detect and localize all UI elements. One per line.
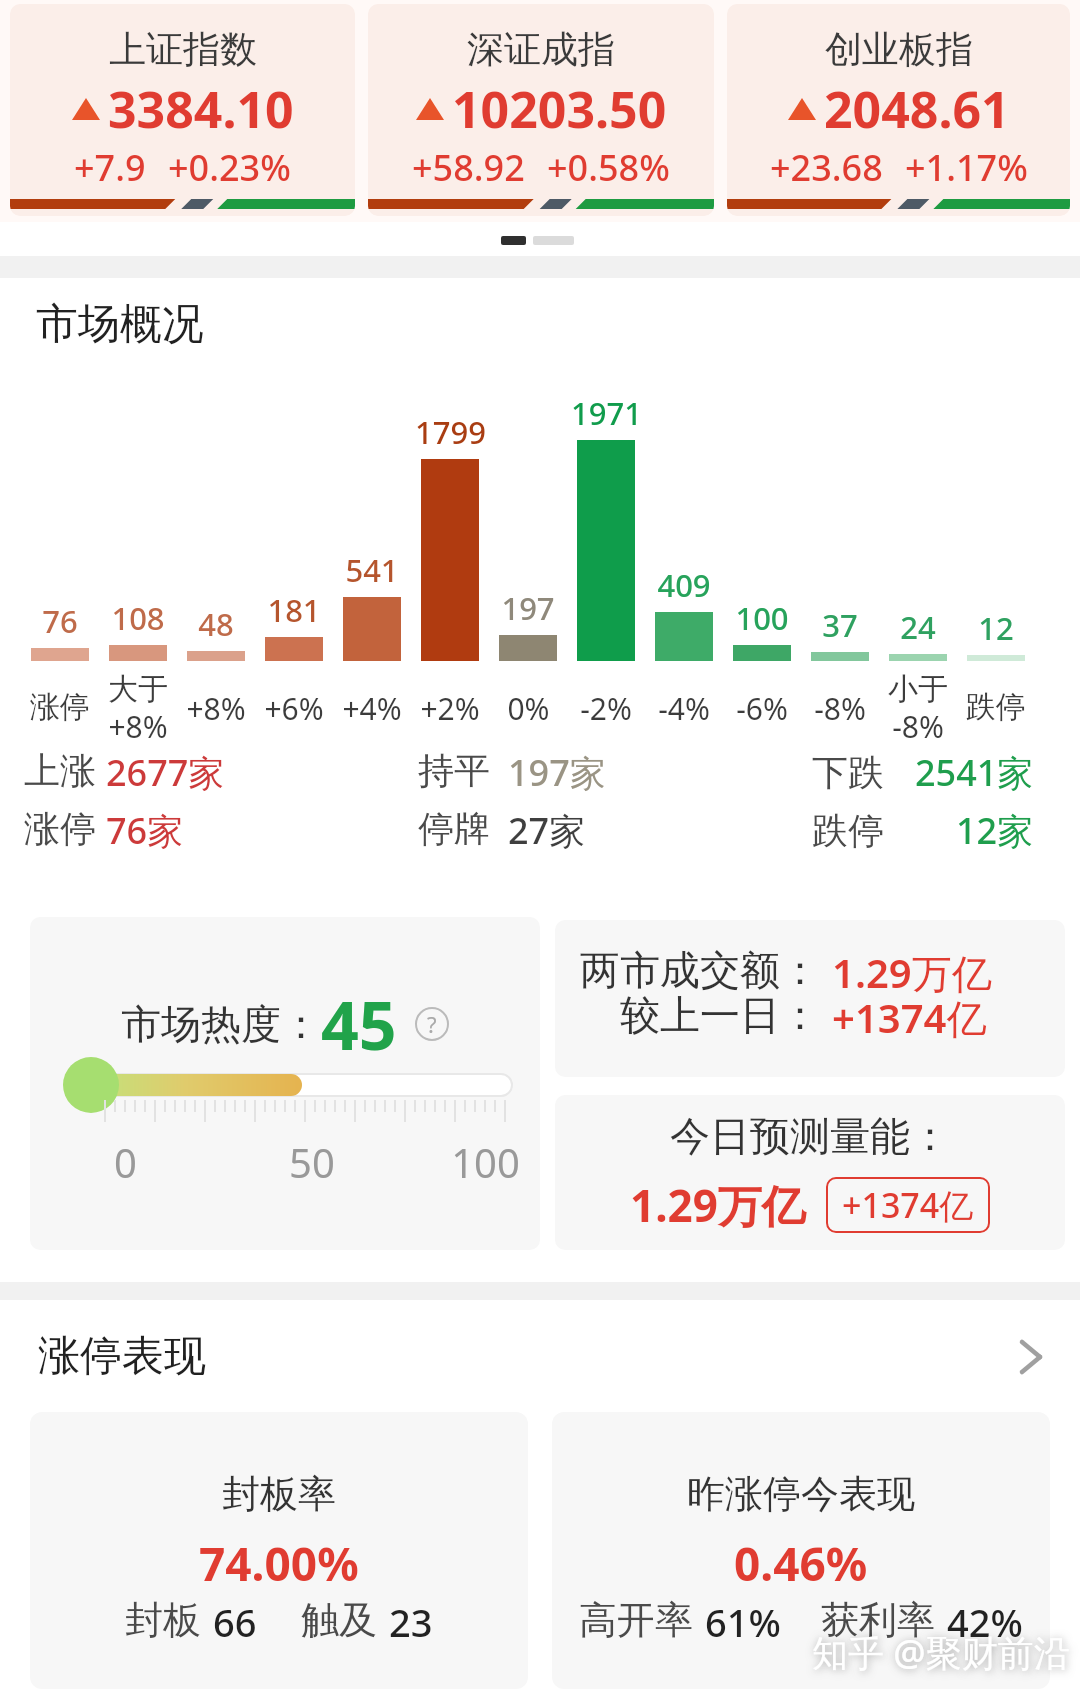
staticText: 181 (267, 589, 321, 631)
staticText: 1971 (571, 392, 642, 434)
staticText: -4% (658, 688, 710, 729)
staticText: +2% (420, 688, 480, 729)
staticText: ? (427, 1009, 437, 1039)
staticText: 0% (507, 688, 550, 729)
staticText: 1.29万亿 (832, 945, 992, 1000)
staticText: 100 (451, 1135, 520, 1189)
staticText: +6% (264, 688, 324, 729)
staticText: -8% (814, 688, 866, 729)
staticText: 涨停 (30, 688, 90, 726)
staticText: 涨停 (24, 806, 96, 851)
staticText: 1.29万亿 (630, 1175, 806, 1235)
staticText: 76家 (106, 806, 184, 855)
staticText: 10203.50 (452, 75, 667, 143)
staticText: -2% (580, 688, 632, 729)
button[interactable]: 市场热度： (30, 917, 540, 1250)
staticText: -8% (892, 706, 944, 747)
staticText: +0.23% (168, 143, 291, 192)
staticText: 45 (321, 979, 397, 1069)
staticText: +8% (186, 688, 246, 729)
staticText: +1374亿 (842, 1182, 974, 1228)
staticText: +23.68 (770, 143, 883, 192)
button[interactable]: 昨涨停今表现 (552, 1412, 1050, 1689)
staticText: +58.92 (412, 143, 525, 192)
staticText: 66 (213, 1596, 257, 1648)
button[interactable]: 深证成指 (368, 4, 714, 216)
staticText: 上涨 (24, 748, 96, 793)
staticText: 高开率 (579, 1596, 693, 1644)
staticText: +7.9 (74, 143, 146, 192)
staticText: 较上一日： (620, 990, 820, 1040)
staticText: 197家 (508, 748, 606, 797)
staticText: 12 (978, 607, 1014, 649)
staticText: 37 (822, 604, 858, 646)
staticText: 小于 (888, 670, 948, 708)
staticText: 541 (345, 549, 399, 591)
staticText: 获利率 (821, 1596, 935, 1644)
staticText: +4% (342, 688, 402, 729)
staticText: 2541家 (915, 748, 1034, 797)
button[interactable]: 创业板指 (727, 4, 1070, 216)
staticText: 市场概况 (36, 298, 204, 351)
staticText: 停牌 (418, 806, 490, 851)
staticText: 今日预测量能： (670, 1111, 950, 1161)
staticText: 2048.61 (824, 75, 1010, 143)
staticText: 市场热度： (121, 999, 321, 1049)
staticText: +8% (108, 706, 168, 747)
staticText: 持平 (418, 748, 490, 793)
staticText: 2677家 (106, 748, 225, 797)
button[interactable]: 两市成交额： (555, 920, 1065, 1077)
staticText: 两市成交额： (580, 945, 820, 995)
staticText: 27家 (508, 806, 586, 855)
staticText: 0 (114, 1135, 137, 1189)
staticText: 23 (389, 1596, 433, 1648)
staticText: 48 (198, 603, 234, 645)
staticText: 61% (705, 1596, 781, 1648)
staticText: 触及 (301, 1596, 377, 1644)
staticText: 知乎 @聚财前沿 (812, 1628, 1070, 1677)
button[interactable]: 上证指数 (10, 4, 355, 216)
staticText: 涨停表现 (38, 1330, 206, 1383)
staticText: +0.58% (547, 143, 670, 192)
staticText: 封板 (125, 1596, 201, 1644)
staticText: 1799 (415, 411, 486, 453)
staticText: 12家 (956, 806, 1034, 855)
button[interactable]: 涨停表现 (0, 1330, 1080, 1383)
staticText: 76 (42, 600, 78, 642)
staticText: 42% (947, 1596, 1023, 1648)
staticText: 3384.10 (108, 75, 294, 143)
staticText: 封板率 (222, 1470, 336, 1518)
staticText: 深证成指 (467, 26, 615, 73)
staticText: 跌停 (812, 808, 884, 853)
staticText: 197 (501, 587, 555, 629)
staticText: 24 (900, 606, 936, 648)
staticText: +1374亿 (832, 990, 987, 1045)
staticText: 74.00% (199, 1532, 359, 1595)
button[interactable]: 封板率 (30, 1412, 528, 1689)
staticText: 上证指数 (109, 26, 257, 73)
staticText: 下跌 (812, 750, 884, 795)
staticText: 100 (735, 597, 789, 639)
staticText: 创业板指 (825, 26, 973, 73)
staticText: 跌停 (966, 688, 1026, 726)
button[interactable]: 今日预测量能： (555, 1095, 1065, 1250)
staticText: 0.46% (734, 1532, 868, 1595)
staticText: -6% (736, 688, 788, 729)
staticText: 大于 (108, 670, 168, 708)
staticText: 108 (111, 597, 165, 639)
staticText: 50 (289, 1135, 335, 1189)
staticText: 昨涨停今表现 (687, 1470, 915, 1518)
staticText: 409 (657, 564, 711, 606)
staticText: +1.17% (905, 143, 1028, 192)
